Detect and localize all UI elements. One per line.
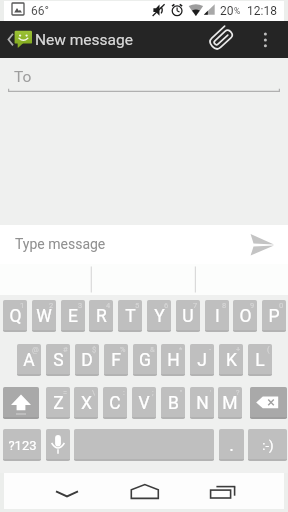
staticText: $ [92,345,97,354]
button[interactable]: Back [37,473,97,509]
staticText: 6 [164,301,169,310]
button[interactable]: F [104,344,128,376]
button[interactable]: X [74,387,98,419]
staticText: Type message [15,236,106,252]
button[interactable]: U [176,300,200,332]
button[interactable]: A [17,344,41,376]
button[interactable]: Space [74,429,214,461]
staticText: K [226,350,237,371]
button[interactable]: B [161,387,185,419]
button[interactable]: C [103,387,127,419]
staticText: D [81,350,93,371]
staticText: W [36,306,52,327]
staticText: % [120,345,126,354]
button[interactable]: :-) [248,429,287,461]
staticText: Q [9,306,22,327]
staticText: To [14,68,32,86]
staticText: U [182,306,194,327]
staticText: 66° [31,4,49,18]
button[interactable]: P [262,300,286,332]
button[interactable]: Recents [192,473,252,509]
staticText: S [53,350,64,371]
staticText: O [239,306,252,327]
staticText: R [96,306,107,327]
button[interactable]: W [32,300,56,332]
button[interactable]: H [161,344,185,376]
staticText: ? [236,388,240,397]
staticText: . [229,435,234,456]
button[interactable]: Z [46,387,70,419]
staticText: L [255,350,265,371]
button[interactable]: J [190,344,214,376]
staticText: 5 [135,301,140,310]
button[interactable]: Shift [3,387,39,419]
staticText: X [81,393,92,414]
button[interactable]: S [46,344,70,376]
staticText: 9 [250,301,255,310]
button[interactable] [195,264,288,295]
button[interactable]: L [248,344,272,376]
button[interactable]: M [218,387,242,419]
button[interactable]: Attach [203,23,236,56]
staticText: \ [92,388,96,397]
staticText: N [196,393,209,414]
staticText: 1 [20,301,25,310]
staticText: ; [152,388,154,397]
button[interactable]: O [233,300,257,332]
staticText: - [209,345,212,354]
button[interactable]: T [118,300,142,332]
button[interactable]: N [190,387,214,419]
staticText: Y [154,306,165,327]
staticText: G [139,350,151,371]
staticText: V [138,393,150,414]
staticText: ( [267,345,270,354]
staticText: : [123,388,125,397]
button[interactable]: ?123 [3,429,41,461]
button[interactable]: I [205,300,229,332]
staticText: New message [35,31,133,49]
button[interactable]: Voice input [46,429,70,461]
staticText: " [180,388,183,397]
staticText: M [222,393,238,414]
button[interactable]: K [219,344,243,376]
button[interactable]: E [61,300,85,332]
staticText: A [23,350,35,371]
staticText: T [125,306,136,327]
staticText: B [168,393,179,414]
button[interactable]: More options [253,23,279,49]
button[interactable]: New message [0,21,136,58]
staticText: 2 [49,301,54,310]
button[interactable]: V [132,387,156,419]
button[interactable]: D [75,344,99,376]
staticText: * [179,345,183,354]
staticText: & [150,345,155,354]
button[interactable]: Backspace [250,387,287,419]
staticText: 20 [220,4,234,18]
staticText: 4 [106,301,111,310]
button[interactable]: R [89,300,113,332]
button[interactable]: Send [244,227,279,262]
staticText: Z [53,393,64,414]
staticText: I [215,306,220,327]
button[interactable]: Home [115,473,175,509]
staticText: 7 [193,301,198,310]
staticText: ' [210,388,212,397]
button[interactable]: Q [3,300,27,332]
button[interactable]: Type message [4,225,239,264]
staticText: E [68,306,78,327]
staticText: :-) [262,438,274,453]
staticText: % [234,6,241,16]
staticText: 0 [279,301,284,310]
button[interactable]: To [6,58,282,95]
button[interactable]: . [219,429,244,461]
button[interactable]: G [133,344,157,376]
button[interactable]: Y [147,300,171,332]
staticText: 3 [78,301,83,310]
staticText: H [167,350,180,371]
staticText: F [111,350,121,371]
staticText: 8 [222,301,227,310]
staticText: @ [32,345,39,354]
staticText: C [109,393,121,414]
